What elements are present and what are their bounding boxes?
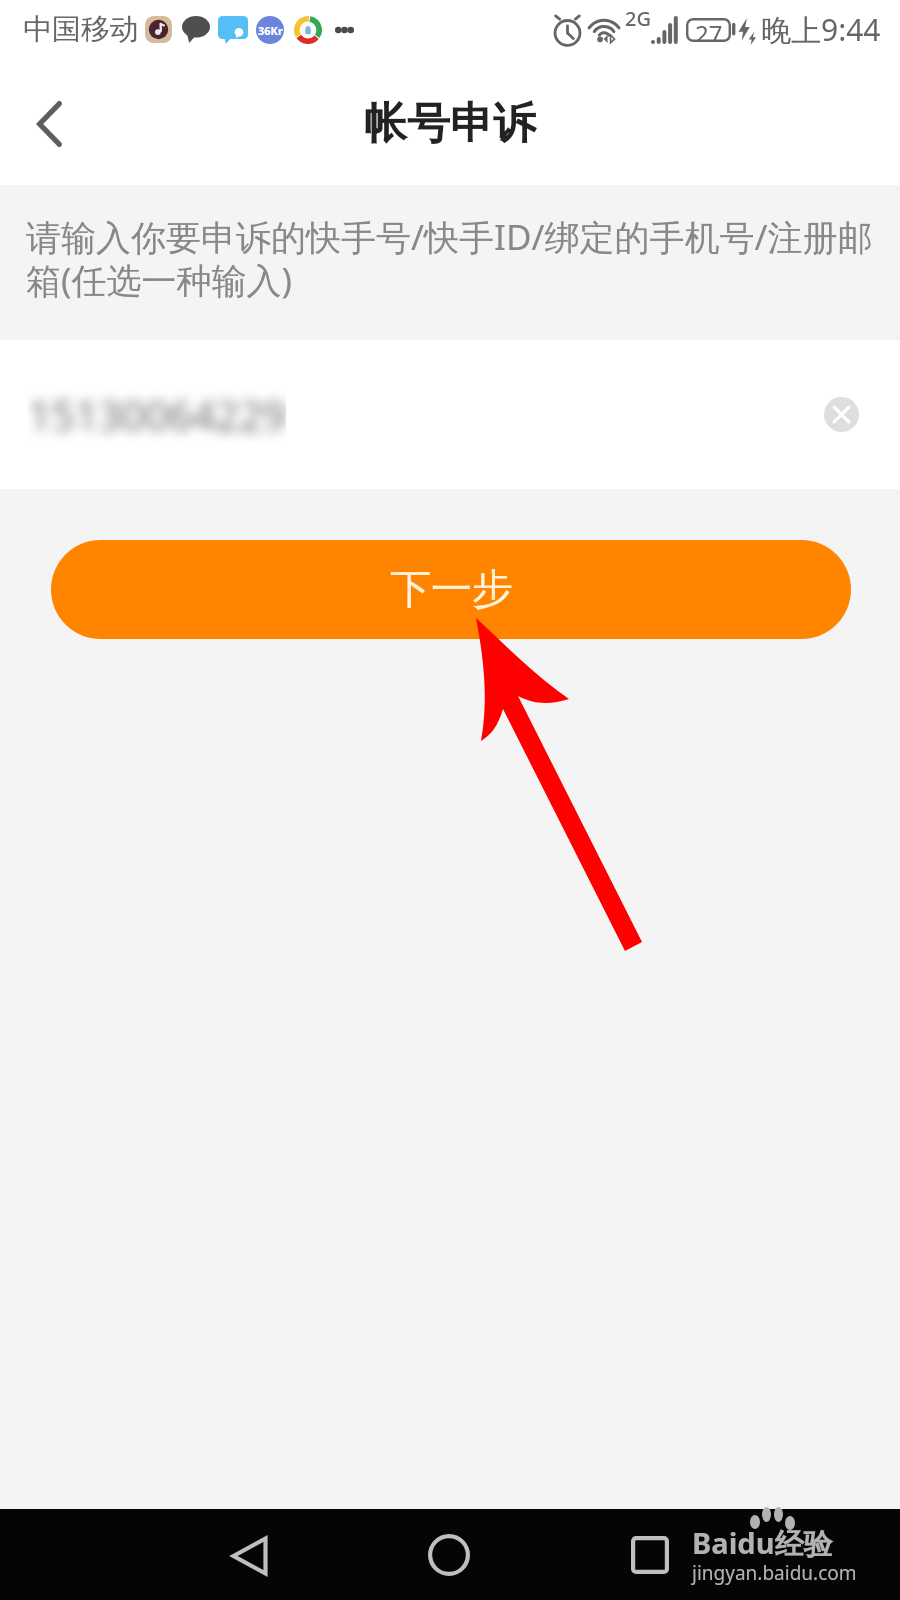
staticText: 27 (695, 17, 723, 41)
staticText: Baidu经验 (692, 1523, 833, 1563)
staticText: 帐号申诉 (364, 97, 536, 151)
button[interactable]: Recents (612, 1525, 688, 1585)
staticText: 请输入你要申诉的快手号/快手ID/绑定的手机号/注册邮箱(任选一种输入) (26, 213, 880, 304)
staticText: 36Kr (258, 23, 283, 38)
staticText: 中国移动 (23, 11, 139, 48)
button[interactable]: Account input field (0, 340, 900, 489)
staticText: 2G (625, 5, 651, 32)
button[interactable]: Home (411, 1525, 487, 1585)
button[interactable]: Clear text (824, 397, 859, 432)
staticText: 15130064229 (28, 387, 286, 443)
button[interactable]: Back (5, 80, 93, 168)
staticText: 晚上9:44 (761, 9, 881, 50)
staticText: jingyan.baidu.com (692, 1560, 857, 1586)
button[interactable]: 下一步 (51, 540, 851, 639)
staticText: 下一步 (390, 564, 513, 616)
button[interactable]: Back (211, 1526, 287, 1586)
